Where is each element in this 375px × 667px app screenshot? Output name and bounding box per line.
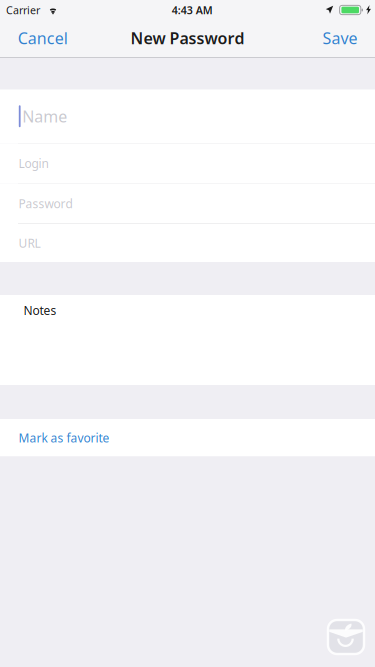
staticText: Carrier — [6, 3, 40, 17]
button[interactable]: Login — [0, 143, 375, 183]
staticText: 4:43 AM — [172, 3, 213, 17]
button[interactable]: Password — [0, 183, 375, 224]
staticText: Notes — [23, 302, 56, 318]
button[interactable]: Notes — [0, 295, 375, 385]
button[interactable]: Cancel — [9, 20, 77, 58]
staticText: URL — [19, 235, 41, 251]
staticText: Mark as favorite — [18, 430, 109, 446]
staticText: Password — [19, 195, 73, 211]
staticText: New Password — [130, 27, 244, 49]
button[interactable]: Name — [0, 89, 375, 143]
button[interactable]: Save — [313, 20, 366, 58]
staticText: Save — [322, 27, 357, 49]
staticText: Cancel — [18, 27, 68, 49]
staticText: Login — [19, 155, 49, 171]
staticText: Name — [22, 106, 67, 127]
button[interactable]: Mark as favorite — [0, 419, 375, 456]
